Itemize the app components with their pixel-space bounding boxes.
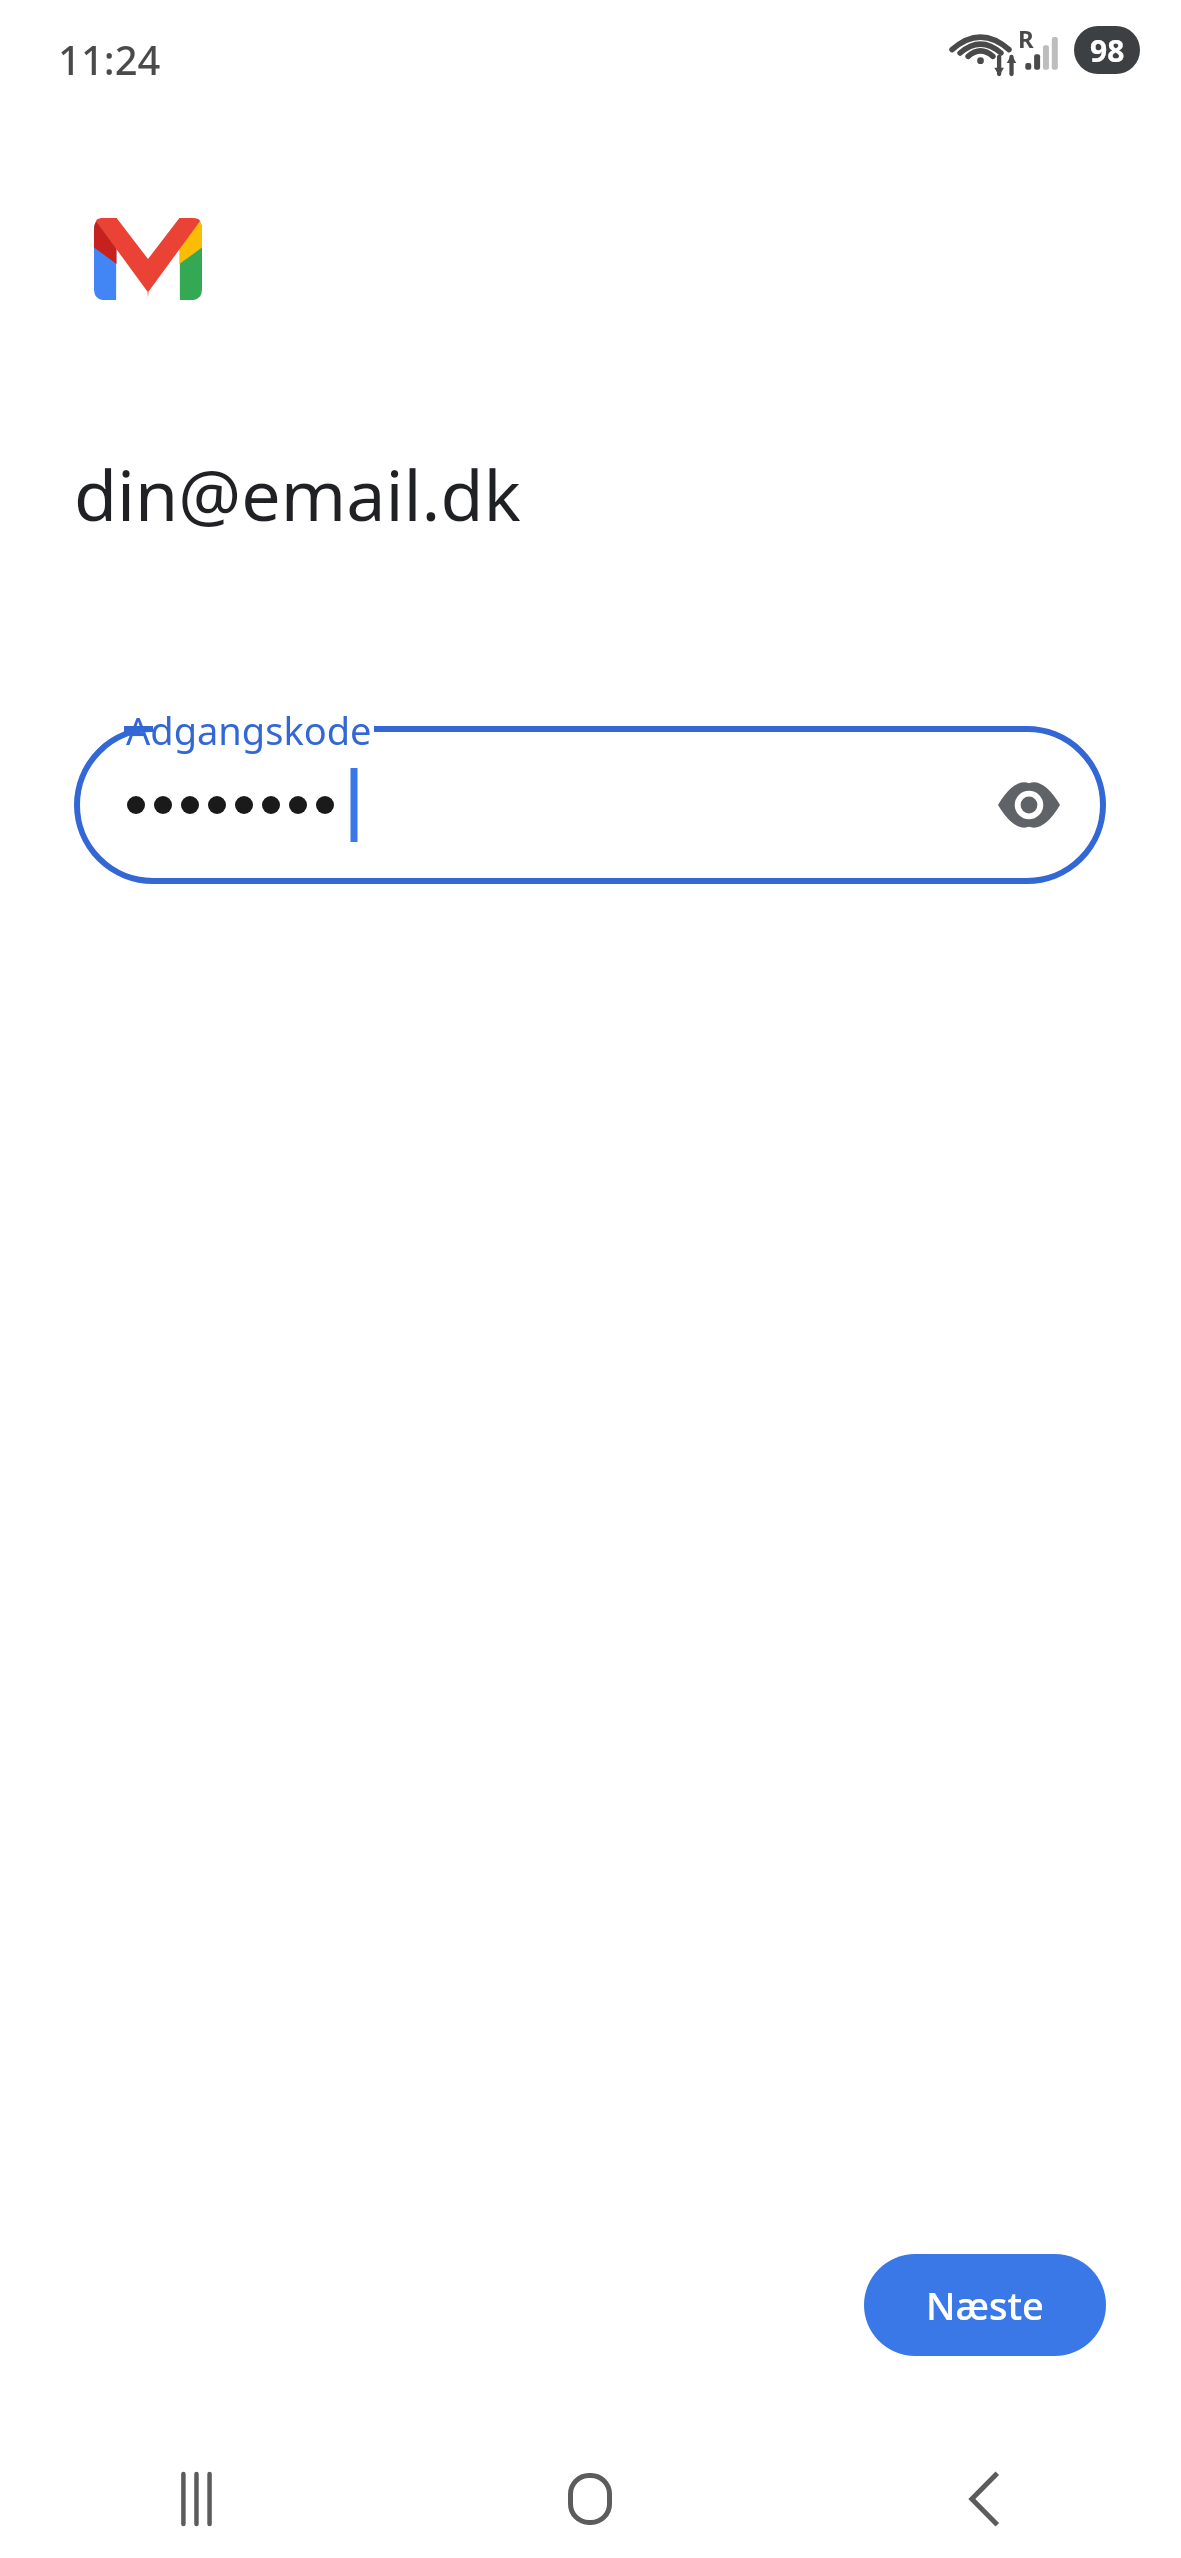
button[interactable]: Home: [393, 2440, 787, 2558]
button[interactable]: Recent apps: [0, 2440, 393, 2558]
staticText: Næste: [926, 2279, 1044, 2331]
staticText: R: [1018, 22, 1034, 55]
staticText: Adgangskode: [126, 704, 372, 756]
staticText: 98: [1090, 30, 1125, 71]
button[interactable]: Back: [787, 2440, 1181, 2558]
button[interactable]: Næste: [864, 2254, 1106, 2356]
button[interactable]: Show password: [74, 726, 1106, 884]
staticText: 11:24: [58, 32, 161, 86]
button[interactable]: Show password: [979, 755, 1079, 855]
staticText: din@email.dk: [74, 446, 521, 541]
